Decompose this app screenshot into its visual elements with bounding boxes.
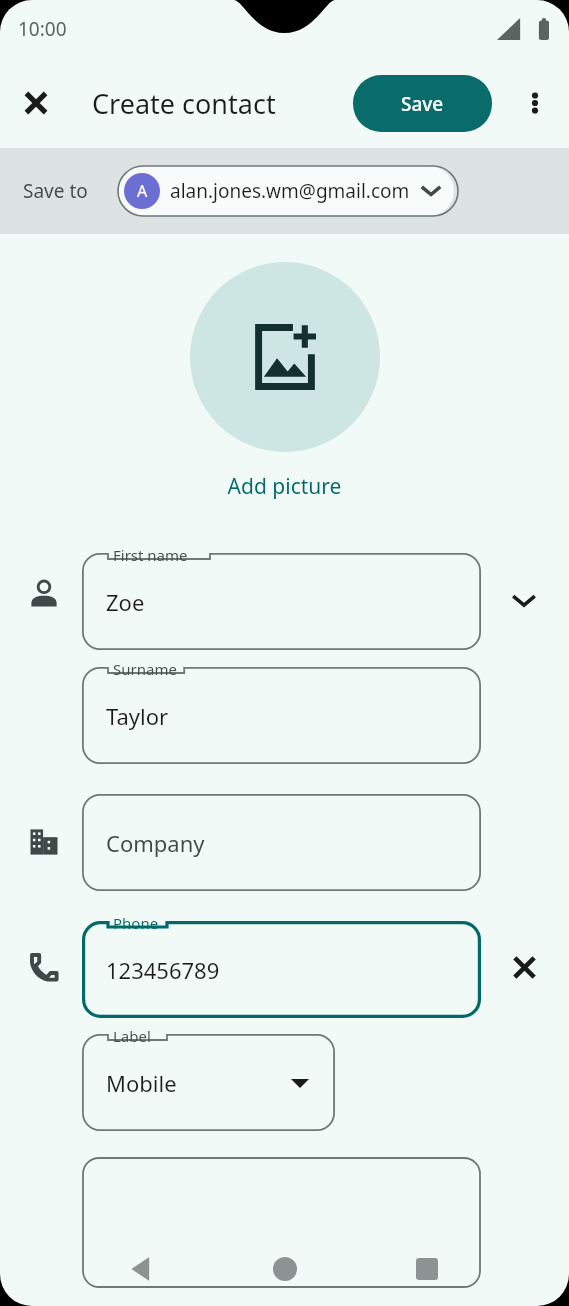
button[interactable]: Close (8, 75, 64, 131)
staticText: 10:00 (18, 16, 67, 42)
staticText: Company (106, 828, 205, 858)
button[interactable]: Save (353, 75, 492, 132)
button[interactable]: Remove phone (500, 943, 548, 991)
button[interactable]: Home (256, 1240, 314, 1298)
staticText: First name (113, 545, 188, 565)
staticText: Zoe (106, 587, 145, 617)
staticText: Save (401, 91, 444, 117)
button[interactable]: Recent apps (398, 1240, 456, 1298)
staticText: Taylor (106, 701, 169, 731)
button[interactable]: Back (113, 1240, 171, 1298)
staticText: Surname (113, 659, 177, 679)
staticText: Save to (23, 178, 88, 204)
button[interactable]: Surname (82, 667, 481, 764)
button[interactable]: Phone (82, 921, 481, 1018)
button[interactable]: A (118, 166, 454, 216)
button[interactable]: First name (82, 553, 481, 650)
staticText: Add picture (0, 472, 569, 501)
button[interactable]: Add picture (190, 262, 380, 452)
staticText: Label (113, 1026, 151, 1046)
button[interactable]: Expand name fields (500, 577, 548, 625)
staticText: Mobile (106, 1068, 177, 1098)
button[interactable]: More options (507, 75, 563, 131)
button[interactable]: Company (82, 794, 481, 891)
staticText: alan.jones.wm@gmail.com (170, 178, 410, 204)
button[interactable]: Label (82, 1034, 335, 1131)
staticText: A (137, 180, 148, 202)
staticText: Phone (113, 913, 159, 933)
staticText: 123456789 (106, 955, 220, 985)
staticText: Create contact (92, 85, 276, 122)
